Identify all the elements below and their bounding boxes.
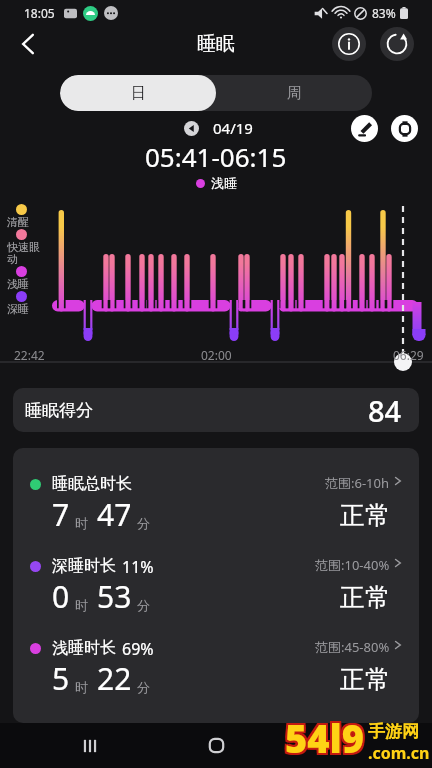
button[interactable]: 深睡时长: [13, 556, 419, 638]
staticText: 22:42: [14, 347, 45, 363]
button[interactable]: Share: [380, 27, 414, 61]
staticText: 分: [137, 679, 150, 695]
staticText: 分: [137, 597, 150, 613]
staticText: 睡眠总时长: [52, 474, 132, 494]
staticText: 日: [131, 84, 146, 103]
staticText: 84: [368, 391, 402, 430]
staticText: 正常: [340, 500, 390, 531]
button[interactable]: Recents: [78, 723, 102, 768]
staticText: 快速眼动: [7, 240, 40, 266]
staticText: 54l9: [287, 714, 367, 766]
staticText: 深睡时长: [52, 556, 116, 576]
staticText: 范围:6-10h: [325, 474, 390, 490]
staticText: 范围:10-40%: [315, 556, 390, 572]
staticText: 正常: [340, 582, 390, 613]
staticText: 04/19: [213, 118, 253, 138]
staticText: 睡眠: [197, 32, 235, 56]
staticText: .com.cn: [368, 742, 430, 764]
staticText: 时: [75, 679, 88, 695]
staticText: 清醒: [7, 215, 40, 229]
button[interactable]: Edit: [351, 115, 378, 142]
staticText: 浅睡时长: [52, 638, 116, 658]
staticText: 54l9: [283, 712, 363, 764]
staticText: 18:05: [24, 5, 55, 21]
button[interactable]: Back: [8, 24, 48, 64]
button[interactable]: 浅睡时长: [13, 638, 419, 720]
staticText: 06:29: [393, 347, 424, 363]
staticText: 47: [97, 494, 132, 535]
staticText: 正常: [340, 664, 390, 695]
button[interactable]: Back: [330, 723, 354, 768]
staticText: 5: [52, 658, 70, 699]
staticText: 54l9: [285, 712, 365, 764]
staticText: 深睡: [7, 302, 40, 316]
button[interactable]: Previous day: [180, 117, 202, 139]
staticText: 53: [97, 576, 132, 617]
staticText: 22: [97, 658, 132, 699]
button[interactable]: 睡眠总时长: [13, 474, 419, 556]
staticText: 54l9: [283, 710, 363, 762]
staticText: 11%: [122, 556, 154, 576]
staticText: 83%: [372, 5, 396, 21]
staticText: 时: [75, 515, 88, 531]
staticText: 54l9: [285, 710, 365, 762]
staticText: 分: [137, 515, 150, 531]
button[interactable]: 睡眠得分: [13, 388, 419, 432]
staticText: 05:41-06:15: [145, 139, 287, 174]
staticText: 69%: [122, 638, 154, 658]
staticText: 浅睡: [7, 277, 40, 291]
staticText: 范围:45-80%: [315, 638, 390, 654]
staticText: 54l9: [287, 712, 367, 764]
staticText: 54l9: [283, 714, 363, 766]
staticText: 7: [52, 494, 70, 535]
button[interactable]: Home: [204, 723, 228, 768]
button[interactable]: 日: [60, 75, 216, 111]
button[interactable]: Watch: [391, 115, 418, 142]
staticText: 浅睡: [211, 175, 237, 191]
staticText: 时: [75, 597, 88, 613]
staticText: 54l9: [285, 714, 365, 766]
staticText: 02:00: [201, 347, 232, 363]
staticText: 周: [287, 84, 302, 103]
staticText: 54l9: [287, 710, 367, 762]
staticText: 手游网: [368, 721, 419, 742]
button[interactable]: 周: [216, 75, 372, 111]
staticText: 睡眠得分: [25, 400, 93, 421]
staticText: 0: [52, 576, 70, 617]
button[interactable]: Info: [332, 27, 366, 61]
